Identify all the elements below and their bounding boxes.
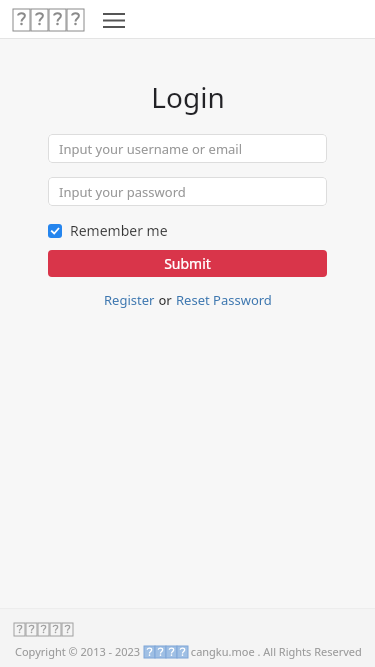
button[interactable]: Submit — [48, 250, 327, 277]
staticText: Input your username or email — [59, 140, 243, 158]
staticText: Input your password — [59, 183, 186, 201]
staticText: Remember me — [70, 221, 168, 240]
staticText: Login — [151, 78, 225, 116]
staticText: Reset Password — [176, 291, 272, 309]
button[interactable]: Register — [104, 291, 155, 309]
staticText: Register — [104, 291, 155, 309]
staticText: cangku.moe . All Rights Reserved — [188, 644, 362, 659]
button[interactable]: Menu — [98, 5, 130, 35]
button[interactable]: Remember me — [48, 221, 327, 240]
button[interactable]: Input your username or email — [48, 134, 327, 163]
staticText: or — [155, 291, 176, 309]
button[interactable]: Site home — [13, 7, 84, 33]
staticText: Submit — [164, 254, 211, 273]
button[interactable]: Reset Password — [176, 291, 272, 309]
button[interactable]: Input your password — [48, 177, 327, 206]
staticText: Copyright © 2013 - 2023 — [15, 644, 144, 659]
